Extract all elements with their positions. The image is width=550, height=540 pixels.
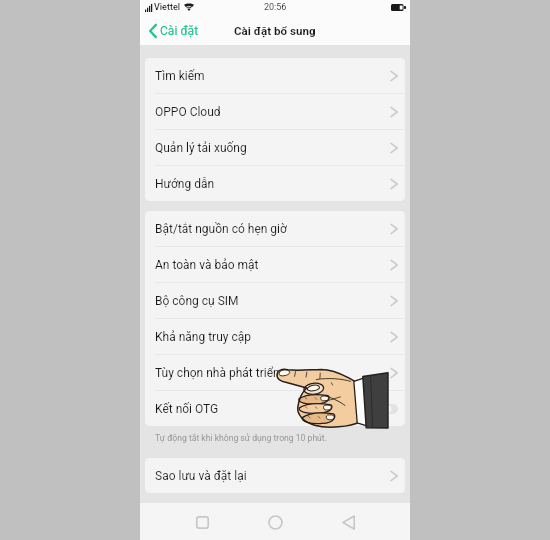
staticText: Cài đặt (160, 24, 199, 38)
staticText: Hướng dẫn (155, 177, 215, 191)
button[interactable]: Khả năng truy cập (145, 319, 405, 354)
staticText: Tùy chọn nhà phát triển (155, 366, 280, 380)
button[interactable]: An toàn và bảo mật (145, 247, 405, 282)
button[interactable]: Tìm kiếm (145, 58, 405, 93)
staticText: Bộ công cụ SIM (155, 294, 239, 308)
staticText: 20:56 (264, 2, 287, 13)
button[interactable]: Back (333, 507, 363, 537)
button[interactable]: Bộ công cụ SIM (145, 283, 405, 318)
staticText: An toàn và bảo mật (155, 258, 259, 272)
staticText: OPPO Cloud (155, 105, 221, 119)
button[interactable]: Hướng dẫn (145, 166, 405, 201)
staticText: Tìm kiếm (155, 69, 205, 83)
staticText: Sao lưu và đặt lại (155, 469, 247, 483)
staticText: Kết nối OTG (155, 402, 219, 416)
button[interactable]: Tùy chọn nhà phát triển (145, 355, 405, 390)
staticText: Tự động tắt khi không sử dụng trong 10 p… (155, 433, 327, 443)
button[interactable]: Quản lý tải xuống (145, 130, 405, 165)
button[interactable]: OPPO Cloud (145, 94, 405, 129)
button[interactable]: Recent apps (187, 507, 217, 537)
button[interactable]: Cài đặt (140, 20, 207, 42)
button[interactable]: Sao lưu và đặt lại (145, 458, 405, 493)
staticText: Bật/tắt nguồn có hẹn giờ (155, 222, 287, 236)
staticText: Cài đặt bổ sung (234, 24, 316, 38)
staticText: Khả năng truy cập (155, 330, 251, 344)
button[interactable]: Home (260, 507, 290, 537)
button[interactable]: Kết nối OTG (145, 391, 405, 426)
staticText: Quản lý tải xuống (155, 141, 247, 155)
staticText: Viettel (154, 2, 181, 13)
button[interactable]: Bật/tắt nguồn có hẹn giờ (145, 211, 405, 246)
